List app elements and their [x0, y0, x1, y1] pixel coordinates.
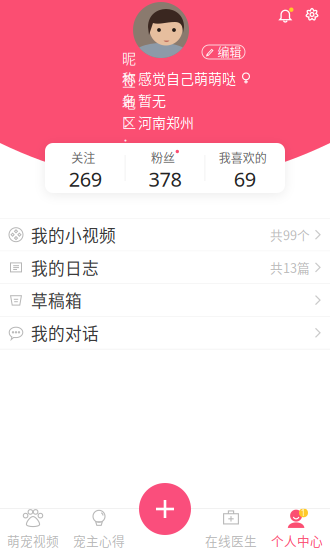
staticText: 萌宠视频 [7, 531, 59, 550]
button[interactable]: 关注 [46, 143, 125, 193]
staticText: 草稿箱 [31, 288, 82, 312]
button[interactable]: 1 [264, 508, 330, 550]
staticText: 378 [148, 166, 181, 192]
button[interactable]: 编辑 [202, 45, 245, 59]
button[interactable]: 宠主心得 [66, 508, 132, 550]
staticText: 宠主心得 [73, 531, 125, 550]
staticText: 粉丝 [151, 149, 175, 166]
staticText: 269 [69, 166, 102, 192]
button[interactable]: 我的小视频 [0, 219, 330, 251]
button[interactable]: 在线医生 [198, 508, 264, 550]
staticText: 个人中心 [271, 531, 323, 550]
staticText: 暂无 [138, 90, 166, 110]
button[interactable]: 草稿箱 [0, 284, 330, 317]
button[interactable]: Create [139, 483, 191, 535]
staticText: 共13篇 [270, 258, 310, 276]
button[interactable]: 粉丝 [125, 143, 204, 193]
staticText: 在线医生 [205, 531, 257, 550]
button[interactable]: Notifications [279, 7, 294, 22]
staticText: 关注 [71, 149, 95, 166]
button[interactable]: 我的日志 [0, 251, 330, 284]
staticText: 我的小视频 [31, 223, 116, 247]
button[interactable]: 我的对话 [0, 317, 330, 349]
staticText: 地区： [122, 92, 136, 152]
staticText: 签名： [122, 70, 136, 130]
staticText: 我喜欢的 [219, 149, 267, 166]
staticText: 河南郑州 [138, 112, 194, 132]
button[interactable]: 萌宠视频 [0, 508, 66, 550]
staticText: 共99个 [270, 225, 310, 244]
staticText: 69 [234, 166, 256, 192]
staticText: 我的日志 [31, 255, 99, 279]
button[interactable]: 我喜欢的 [205, 143, 284, 193]
staticText: 编辑 [217, 43, 241, 61]
button[interactable]: Settings [305, 7, 319, 21]
staticText: 感觉自己萌萌哒 [138, 68, 236, 88]
staticText: 1 [301, 507, 306, 518]
staticText: 昵称： [122, 48, 136, 108]
staticText: 我的对话 [31, 321, 99, 345]
